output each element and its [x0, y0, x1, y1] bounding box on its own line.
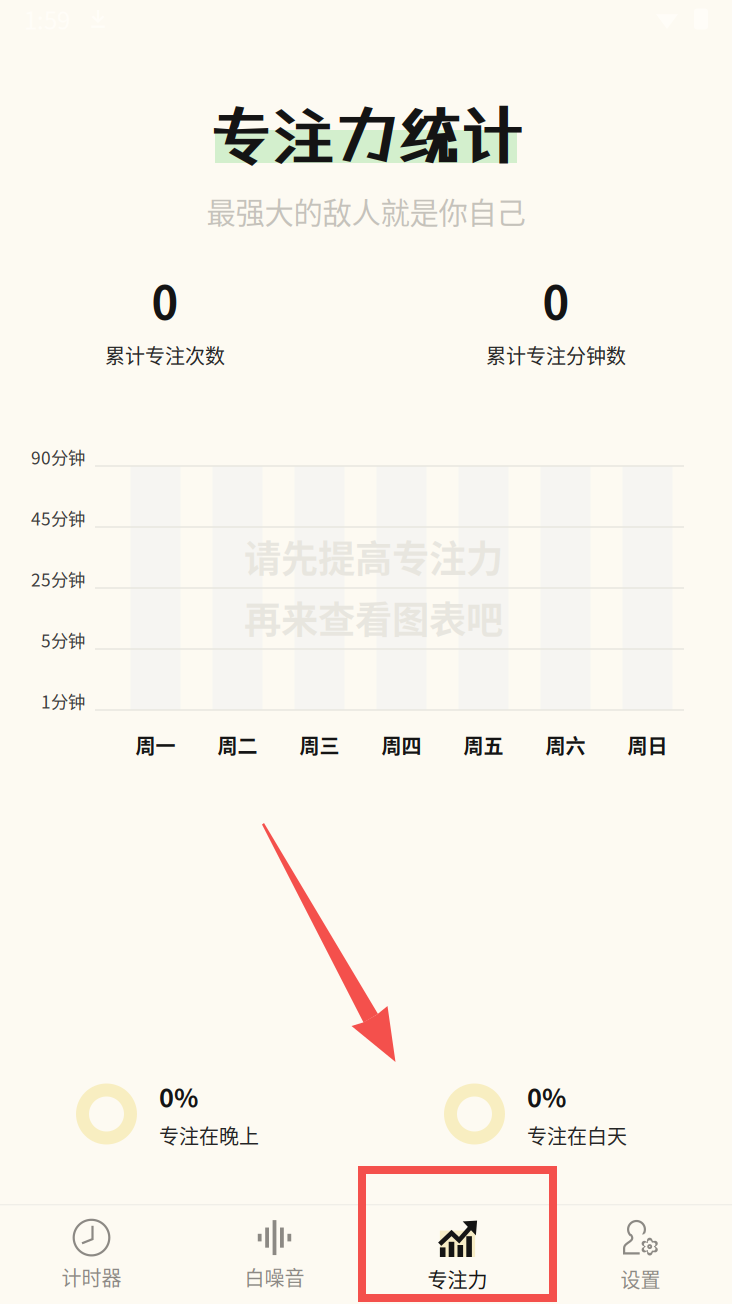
staticText: 白噪音	[244, 1263, 304, 1292]
staticText: 专注力统计	[208, 99, 523, 173]
button[interactable]: 设置	[549, 1206, 732, 1303]
staticText: 周二	[217, 730, 257, 759]
staticText: 累计专注次数	[105, 341, 225, 370]
staticText: 25分钟	[31, 566, 85, 592]
staticText: 周日	[627, 730, 667, 759]
button[interactable]: 白噪音	[183, 1206, 366, 1303]
staticText: 再来查看图表吧	[244, 590, 503, 645]
staticText: 专注在白天	[527, 1121, 627, 1150]
staticText: 周六	[545, 730, 585, 759]
staticText: 周一	[135, 730, 175, 759]
staticText: 专注力	[427, 1265, 487, 1294]
staticText: 0%	[159, 1078, 198, 1115]
staticText: 周三	[299, 730, 339, 759]
staticText: 专注在晚上	[159, 1121, 259, 1150]
staticText: 1分钟	[41, 688, 85, 714]
staticText: 计时器	[61, 1263, 121, 1292]
staticText: 0	[151, 267, 178, 333]
staticText: 90分钟	[31, 444, 85, 470]
staticText: 0%	[527, 1078, 566, 1115]
staticText: 周五	[463, 730, 503, 759]
staticText: 45分钟	[31, 505, 85, 531]
staticText: 设置	[620, 1265, 660, 1294]
staticText: 累计专注分钟数	[486, 341, 626, 370]
button[interactable]: 专注力	[366, 1206, 549, 1303]
staticText: 0	[542, 267, 569, 333]
staticText: 最强大的敌人就是你自己	[206, 190, 525, 232]
staticText: 5分钟	[41, 627, 85, 653]
button[interactable]: 计时器	[0, 1206, 183, 1303]
staticText: 周四	[381, 730, 421, 759]
staticText: 请先提高专注力	[244, 529, 503, 583]
